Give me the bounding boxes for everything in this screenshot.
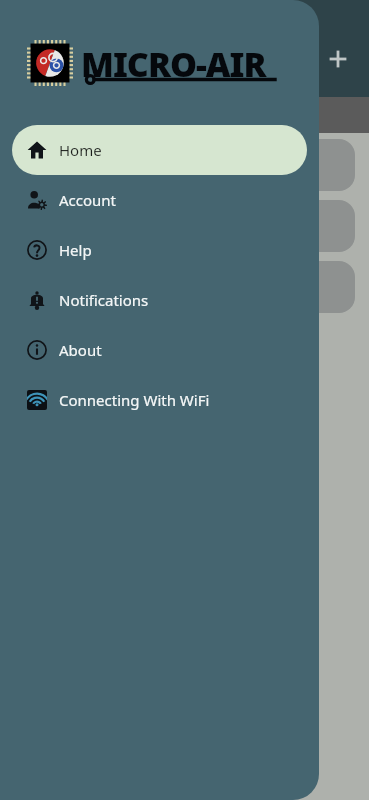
staticText: Notifications (59, 290, 149, 310)
button[interactable]: Connecting With WiFi (12, 375, 307, 425)
staticText: Help (59, 240, 92, 260)
staticText: Account (59, 190, 117, 210)
button[interactable]: Home (12, 125, 307, 175)
button[interactable]: Add (324, 45, 352, 73)
staticText: Home (59, 140, 102, 160)
button[interactable]: About (12, 325, 307, 375)
staticText: Connecting With WiFi (59, 390, 210, 410)
button[interactable] (20, 139, 355, 191)
button[interactable] (20, 200, 355, 252)
staticText: MICRO-AIR (81, 41, 266, 87)
button[interactable]: Account (12, 175, 307, 225)
button[interactable]: Notifications (12, 275, 307, 325)
button[interactable]: Help (12, 225, 307, 275)
staticText: About (59, 340, 102, 360)
button[interactable] (20, 261, 355, 313)
